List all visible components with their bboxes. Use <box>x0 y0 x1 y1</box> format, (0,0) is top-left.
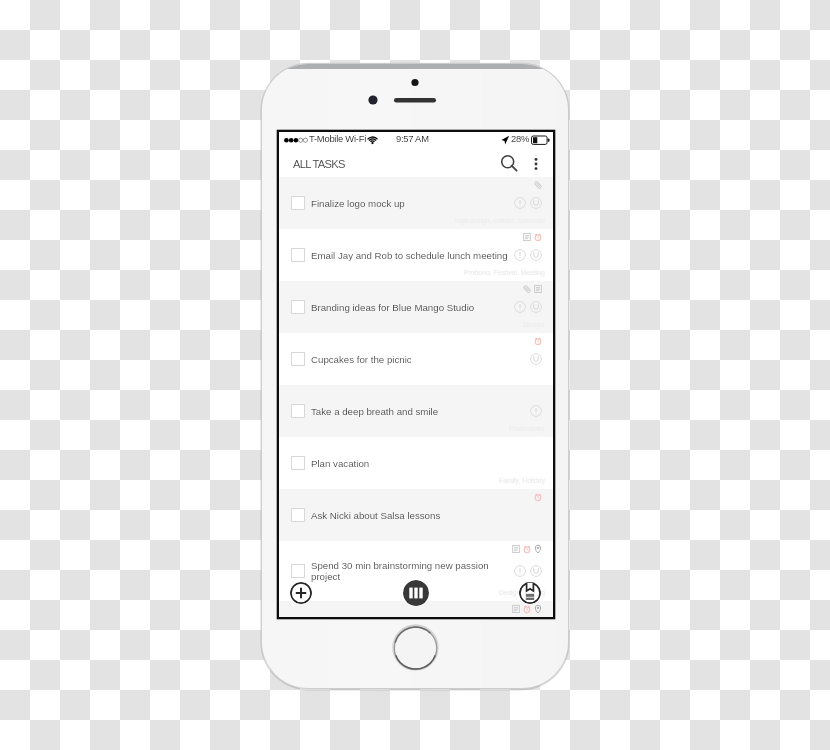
button[interactable]: Complete task <box>291 248 305 262</box>
button[interactable]: Repeat <box>530 301 542 313</box>
staticText: Take a deep breath and smile <box>311 406 516 417</box>
button[interactable] <box>279 601 553 617</box>
button[interactable]: Task info <box>514 565 526 577</box>
staticText: Finalize logo mock up <box>311 198 516 209</box>
button[interactable]: Complete task <box>279 385 553 437</box>
staticText <box>311 604 516 615</box>
button[interactable]: Complete task <box>279 333 553 385</box>
staticText: Family, Holiday <box>499 477 545 485</box>
staticText: 9:57 AM <box>396 133 429 144</box>
button[interactable]: Complete task <box>279 489 553 541</box>
button[interactable]: Add task <box>290 582 312 604</box>
staticText: logo design, colbert, Evernote <box>455 217 545 225</box>
button[interactable]: Complete task <box>279 437 553 489</box>
button[interactable]: Board view <box>403 580 429 606</box>
staticText: Productivity <box>509 425 545 433</box>
button[interactable]: Task info <box>514 301 526 313</box>
staticText: Branding ideas for Blue Mango Studio <box>311 302 516 313</box>
button[interactable]: Repeat <box>530 249 542 261</box>
button[interactable]: Complete task <box>279 229 553 281</box>
button[interactable]: Complete task <box>291 456 305 470</box>
staticText: Email Jay and Rob to schedule lunch meet… <box>311 250 516 261</box>
button[interactable]: Complete task <box>291 508 305 522</box>
button[interactable]: Saved lists <box>519 582 541 604</box>
staticText: Ask Nicki about Salsa lessons <box>311 510 516 521</box>
button[interactable]: Task info <box>514 197 526 209</box>
button[interactable]: Complete task <box>279 177 553 229</box>
button[interactable]: Repeat <box>530 565 542 577</box>
button[interactable]: Search <box>498 152 522 176</box>
button[interactable]: Complete task <box>279 281 553 333</box>
button[interactable]: Complete task <box>291 300 305 314</box>
staticText: Probono, Festival, Meeting <box>464 269 545 277</box>
staticText: Cupcakes for the picnic <box>311 354 516 365</box>
button[interactable]: Complete task <box>291 564 305 578</box>
staticText: 28% <box>511 133 530 144</box>
button[interactable]: Complete task <box>279 541 553 601</box>
button[interactable]: Complete task <box>291 196 305 210</box>
button[interactable]: Task info <box>514 249 526 261</box>
button[interactable]: Complete task <box>291 352 305 366</box>
button[interactable]: Repeat <box>530 197 542 209</box>
button[interactable]: Repeat <box>530 353 542 365</box>
button[interactable]: Complete task <box>291 404 305 418</box>
staticText: Plan vacation <box>311 458 516 469</box>
staticText: Design <box>523 321 545 329</box>
staticText: Spend 30 min brainstorming new passion p… <box>311 560 516 582</box>
button[interactable]: Task info <box>530 405 542 417</box>
staticText: T-Mobile Wi-Fi <box>309 133 367 144</box>
staticText: ALL TASKS <box>293 158 345 171</box>
button[interactable]: More options <box>525 153 547 175</box>
staticText: Design, Writing <box>499 589 545 597</box>
